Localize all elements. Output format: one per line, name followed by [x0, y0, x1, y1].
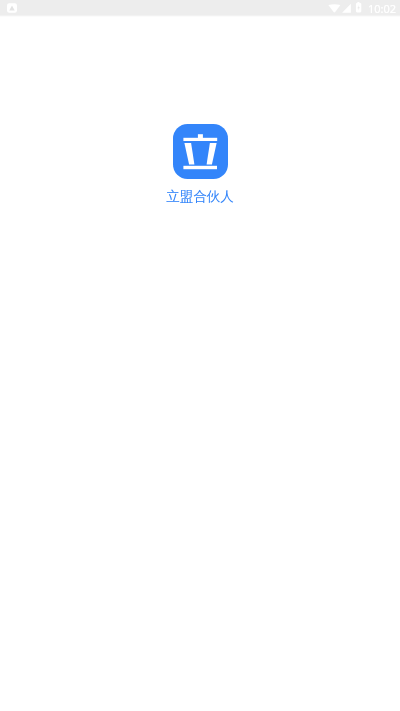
button[interactable]: 立盟合伙人 [173, 124, 228, 179]
other: Wi-Fi, signal, battery [327, 0, 361, 17]
other: Notification [7, 3, 17, 13]
staticText: 10:02 [368, 1, 397, 16]
staticText: 立盟合伙人 [166, 188, 234, 205]
